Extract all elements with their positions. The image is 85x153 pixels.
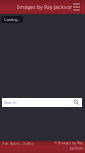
button[interactable]: Search [2, 98, 82, 107]
button[interactable]: View: Mobile | Desktop [2, 142, 34, 145]
button[interactable]: Menu [69, 0, 85, 14]
staticText: © Images by Ray [54, 140, 83, 145]
staticText: Search [4, 100, 16, 105]
staticText: Images by Ray Jackson [17, 3, 73, 11]
staticText: View: Mobile | Desktop [2, 142, 34, 145]
staticText: Loading… [4, 17, 20, 22]
staticText: Jackson [70, 145, 83, 151]
